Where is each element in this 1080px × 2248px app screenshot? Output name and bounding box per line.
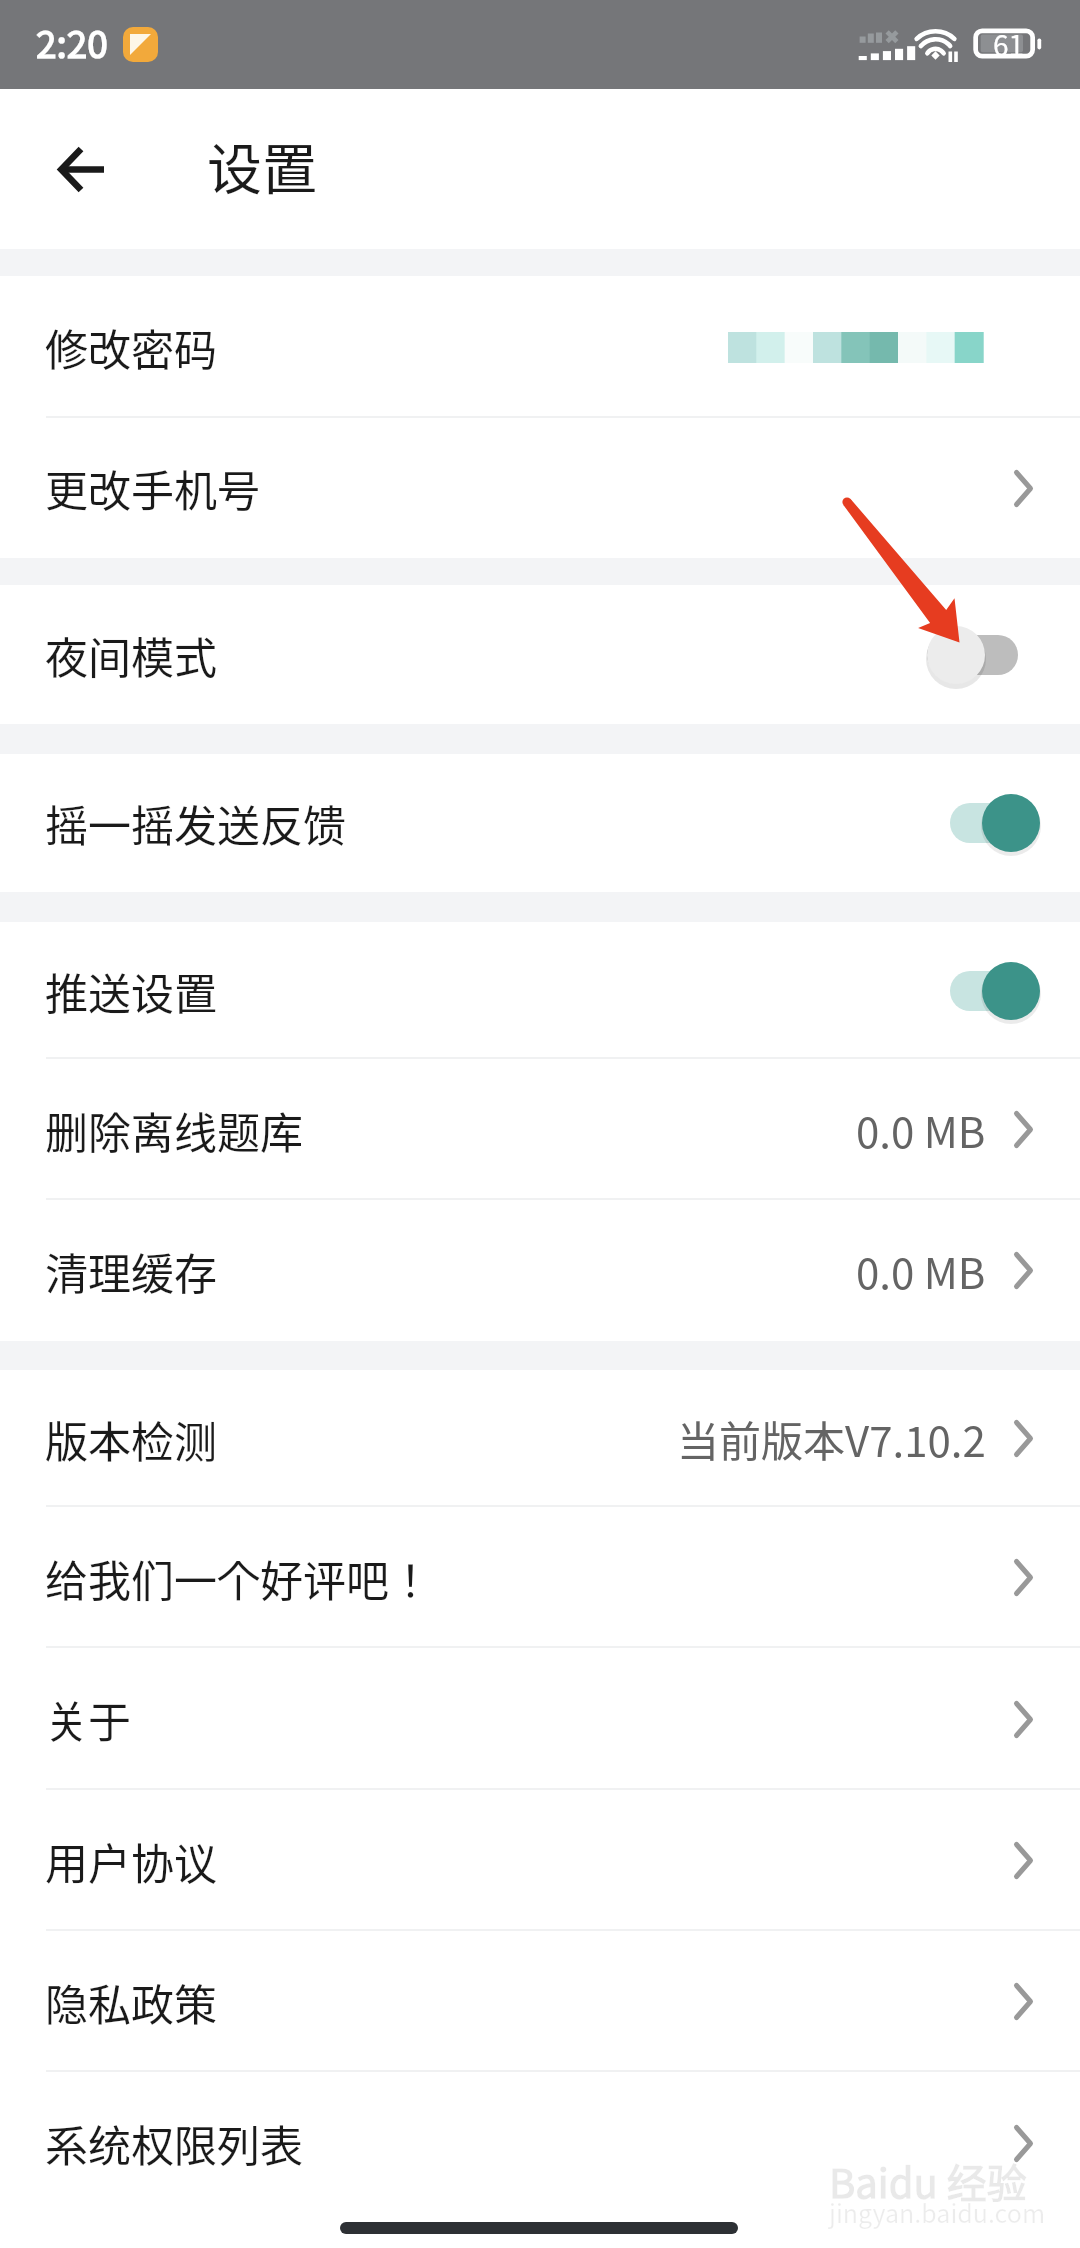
button[interactable]: Back bbox=[32, 120, 130, 218]
staticText: jingyan.baidu.com bbox=[829, 2194, 1046, 2230]
staticText: Baidu 经验 bbox=[829, 2152, 1027, 2210]
button[interactable]: 摇一摇发送反馈 bbox=[0, 754, 1080, 892]
button[interactable]: 版本检测 bbox=[0, 1370, 1080, 1507]
staticText: 61 bbox=[993, 24, 1025, 65]
staticText: 关于 bbox=[45, 1688, 131, 1750]
button[interactable]: 关于 bbox=[0, 1648, 1080, 1790]
staticText: 更改手机号 bbox=[45, 457, 260, 519]
button[interactable]: 夜间模式 bbox=[0, 585, 1080, 724]
button[interactable]: 推送设置 bbox=[0, 922, 1080, 1059]
button[interactable]: 更改手机号 bbox=[0, 418, 1080, 558]
staticText: 隐私政策 bbox=[45, 1971, 217, 2033]
staticText: 修改密码 bbox=[45, 316, 217, 378]
button[interactable]: Toggle on bbox=[950, 794, 1040, 852]
button[interactable]: 系统权限列表 bbox=[0, 2072, 1080, 2214]
staticText: 版本检测 bbox=[45, 1408, 217, 1470]
button[interactable]: Toggle on bbox=[950, 962, 1040, 1020]
staticText: 给我们一个好评吧！ bbox=[45, 1547, 432, 1609]
staticText: 当前版本V7.10.2 bbox=[677, 1408, 986, 1469]
button[interactable]: 修改密码 bbox=[0, 276, 1080, 418]
staticText: 2:20 bbox=[36, 15, 108, 69]
button[interactable]: 用户协议 bbox=[0, 1790, 1080, 1931]
button[interactable]: 隐私政策 bbox=[0, 1931, 1080, 2072]
staticText: 用户协议 bbox=[45, 1830, 217, 1892]
staticText: 清理缓存 bbox=[45, 1240, 217, 1302]
staticText: 摇一摇发送反馈 bbox=[45, 792, 346, 854]
staticText: 推送设置 bbox=[45, 960, 217, 1022]
staticText: 设置 bbox=[207, 125, 318, 205]
staticText: 0.0 MB bbox=[856, 1240, 986, 1301]
staticText: 系统权限列表 bbox=[45, 2112, 303, 2174]
staticText: 0.0 MB bbox=[856, 1099, 986, 1160]
button[interactable]: 给我们一个好评吧！ bbox=[0, 1507, 1080, 1648]
staticText: 删除离线题库 bbox=[45, 1099, 303, 1161]
staticText: 夜间模式 bbox=[45, 624, 217, 686]
button[interactable]: 删除离线题库 bbox=[0, 1059, 1080, 1200]
button[interactable]: 清理缓存 bbox=[0, 1200, 1080, 1341]
button[interactable]: Toggle off bbox=[927, 626, 1018, 684]
